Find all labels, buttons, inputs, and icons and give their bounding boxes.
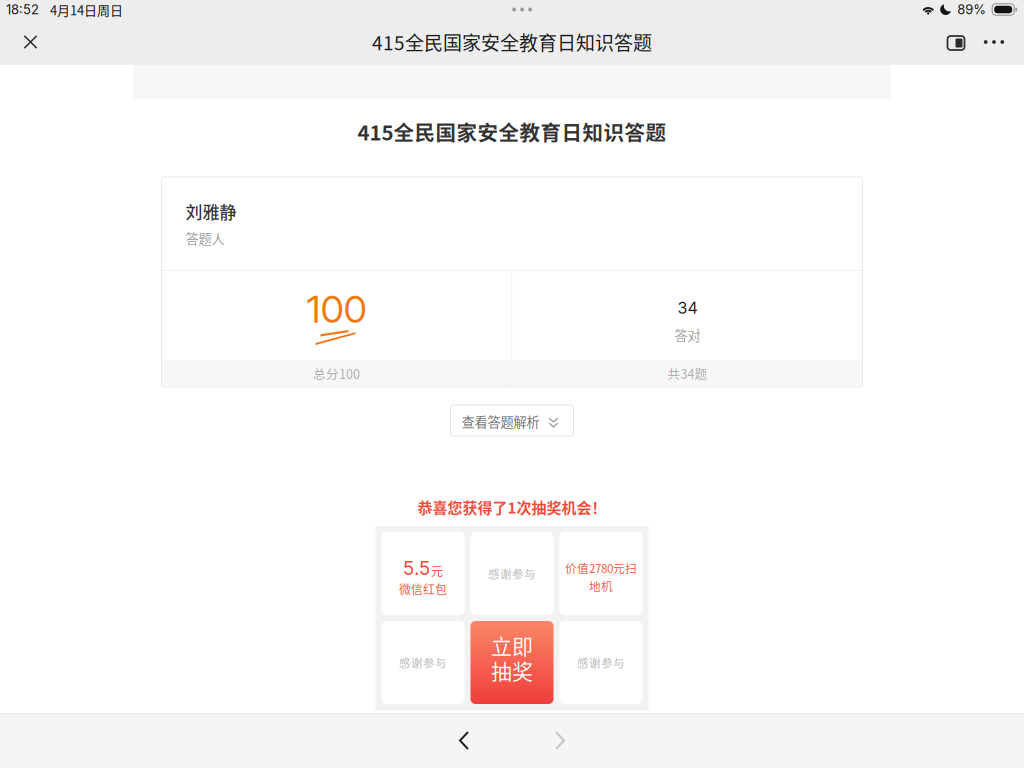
- staticText: 地机: [589, 577, 613, 594]
- staticText: 感谢参与: [399, 654, 447, 671]
- button[interactable]: 5.5: [381, 532, 464, 615]
- staticText: 18:52: [6, 2, 39, 17]
- staticText: 抽奖: [491, 655, 533, 685]
- staticText: 查看答题解析: [461, 412, 539, 431]
- staticText: 89%: [957, 2, 986, 17]
- staticText: 415全民国家安全教育日知识答题: [372, 28, 652, 56]
- staticText: 答题人: [185, 229, 224, 248]
- staticText: 立即: [491, 630, 533, 660]
- staticText: 5.5: [403, 556, 430, 579]
- staticText: 415全民国家安全教育日知识答题: [357, 117, 666, 146]
- staticText: 4月14日周日: [50, 0, 123, 19]
- button[interactable]: Forward: [525, 713, 595, 768]
- button[interactable]: More: [964, 19, 1024, 65]
- staticText: 价值2780元扫: [565, 559, 637, 576]
- button[interactable]: Windows: [914, 19, 964, 65]
- staticText: 感谢参与: [488, 565, 536, 582]
- staticText: 答对: [674, 325, 700, 344]
- button[interactable]: 感谢参与: [470, 532, 553, 615]
- staticText: 刘雅静: [185, 199, 236, 224]
- staticText: 微信红包: [399, 580, 447, 598]
- button[interactable]: 价值2780元扫: [559, 532, 642, 615]
- button[interactable]: Back: [429, 713, 499, 768]
- staticText: 34: [677, 298, 697, 318]
- staticText: 感谢参与: [577, 654, 625, 671]
- button[interactable]: Close: [0, 19, 61, 65]
- button[interactable]: 立即: [470, 621, 553, 704]
- staticText: 共34题: [667, 364, 707, 383]
- staticText: 恭喜您获得了1次抽奖机会！: [417, 496, 606, 518]
- button[interactable]: 感谢参与: [559, 621, 642, 704]
- button[interactable]: 查看答题解析: [450, 405, 573, 436]
- staticText: 元: [431, 562, 443, 579]
- staticText: 总分100: [313, 364, 360, 383]
- button[interactable]: 感谢参与: [381, 621, 464, 704]
- staticText: 100: [306, 286, 366, 332]
